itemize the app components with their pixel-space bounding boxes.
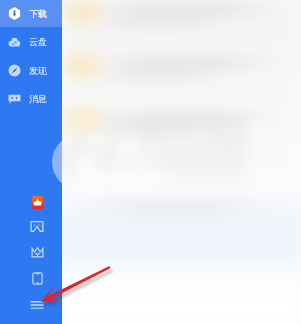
button[interactable]: Mobile	[0, 266, 62, 290]
staticText: 云盘	[29, 36, 47, 47]
button[interactable]: More	[0, 292, 62, 318]
button[interactable]: 发现	[0, 56, 62, 84]
button[interactable]: 下载	[0, 0, 62, 27]
button[interactable]: 云盘	[0, 27, 62, 56]
button[interactable]: Premium	[0, 240, 62, 264]
button[interactable]: 消息	[0, 84, 62, 113]
button[interactable]: Games	[0, 214, 62, 238]
staticText: 消息	[29, 93, 47, 104]
button[interactable]: Hot apps	[0, 190, 62, 214]
staticText: 发现	[29, 65, 47, 76]
staticText: 下载	[29, 8, 47, 19]
